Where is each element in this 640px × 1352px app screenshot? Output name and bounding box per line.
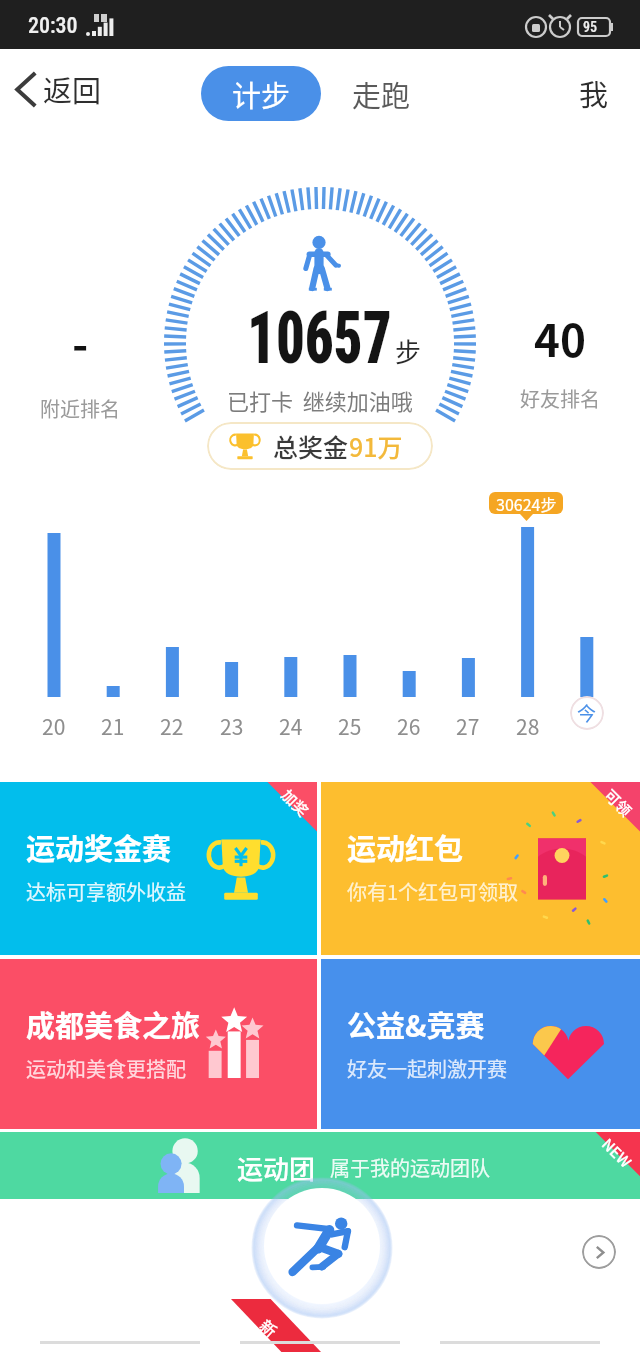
staticText: 总奖金 bbox=[273, 428, 349, 464]
staticText: 40 bbox=[534, 306, 586, 370]
staticText: 好友排名 bbox=[520, 384, 600, 413]
button[interactable]: 返回 bbox=[8, 58, 114, 120]
staticText: 走跑 bbox=[352, 73, 411, 115]
staticText: 23 bbox=[220, 711, 244, 741]
button[interactable]: 我 bbox=[566, 64, 622, 122]
button[interactable]: 开始跑步 bbox=[264, 1188, 380, 1304]
staticText: 属于我的运动团队 bbox=[330, 1153, 490, 1182]
staticText: 运动奖金赛 bbox=[26, 826, 172, 868]
staticText: 28 bbox=[516, 711, 540, 741]
staticText: 加奖 bbox=[277, 784, 314, 822]
staticText: 我 bbox=[579, 72, 609, 114]
staticText: 25 bbox=[338, 711, 362, 741]
staticText: 新 bbox=[255, 1313, 283, 1342]
staticText: 20:30 bbox=[28, 13, 78, 39]
button[interactable]: 运动红包 bbox=[321, 782, 640, 955]
button[interactable]: 走跑 bbox=[337, 66, 425, 121]
staticText: 成都美食之旅 bbox=[26, 1003, 201, 1045]
staticText: 27 bbox=[456, 711, 480, 741]
staticText: 今 bbox=[577, 699, 597, 727]
staticText: 20 bbox=[42, 711, 66, 741]
staticText: 30624步 bbox=[496, 492, 557, 514]
staticText: 运动和美食更搭配 bbox=[26, 1054, 186, 1083]
staticText: 91万 bbox=[349, 428, 403, 464]
staticText: 26 bbox=[397, 711, 421, 741]
button[interactable]: 今天 bbox=[570, 696, 604, 730]
button[interactable]: 更多 bbox=[582, 1235, 616, 1269]
staticText: 可领 bbox=[600, 784, 637, 822]
staticText: 好友一起刺激开赛 bbox=[347, 1054, 507, 1083]
staticText: 21 bbox=[101, 711, 125, 741]
staticText: 计步 bbox=[232, 73, 291, 115]
button[interactable]: 运动奖金赛 bbox=[0, 782, 317, 955]
staticText: 附近排名 bbox=[40, 394, 120, 423]
staticText: 返回 bbox=[43, 68, 102, 110]
staticText: 10657 bbox=[247, 295, 392, 381]
staticText: 达标可享额外收益 bbox=[26, 877, 186, 906]
staticText: 运动团 bbox=[237, 1149, 316, 1187]
staticText: 你有1个红包可领取 bbox=[347, 877, 519, 906]
staticText: 24 bbox=[279, 711, 303, 741]
staticText: NEW bbox=[597, 1133, 637, 1173]
staticText: 运动红包 bbox=[347, 826, 464, 868]
button[interactable]: 运动团 bbox=[0, 1132, 640, 1199]
staticText: 95 bbox=[583, 19, 597, 35]
staticText: 步 bbox=[395, 332, 422, 370]
staticText: - bbox=[72, 310, 89, 374]
button[interactable]: 总奖金 bbox=[207, 422, 433, 470]
button[interactable]: 成都美食之旅 bbox=[0, 959, 317, 1129]
button[interactable]: 公益&竞赛 bbox=[321, 959, 640, 1129]
staticText: 22 bbox=[160, 711, 184, 741]
button[interactable]: 计步 bbox=[201, 66, 321, 121]
staticText: 已打卡 继续加油哦 bbox=[227, 384, 413, 416]
staticText: 公益&竞赛 bbox=[347, 1003, 485, 1045]
